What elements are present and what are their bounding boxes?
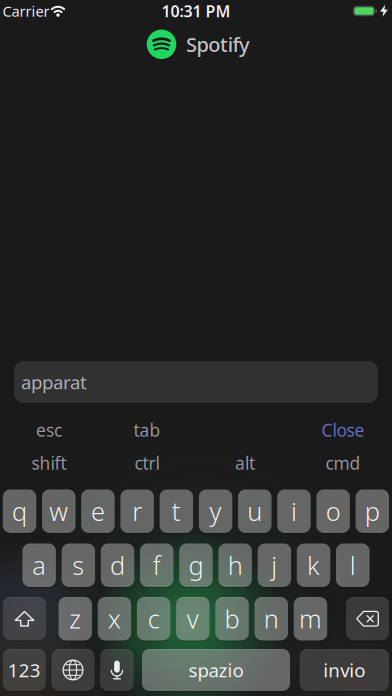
button[interactable]: alt [196, 448, 294, 478]
staticText: d [110, 548, 125, 582]
staticText: apparat [21, 370, 87, 394]
staticText: c [148, 602, 160, 635]
button[interactable]: a [22, 543, 56, 587]
staticText: r [132, 494, 142, 528]
button[interactable]: esc [0, 415, 98, 445]
button[interactable]: o [316, 489, 350, 533]
button[interactable]: v [176, 597, 210, 640]
button[interactable]: cmd [294, 448, 392, 478]
staticText: shift [31, 451, 66, 474]
button[interactable]: x [98, 597, 131, 640]
staticText: w [49, 494, 68, 528]
staticText: l [350, 548, 356, 582]
staticText: cmd [325, 451, 360, 474]
staticText: ctrl [134, 451, 159, 474]
button[interactable]: i [277, 489, 311, 533]
button[interactable]: u [238, 489, 271, 533]
staticText: o [326, 494, 341, 528]
staticText: tab [133, 418, 160, 441]
staticText: g [188, 548, 203, 582]
button[interactable]: spazio [142, 649, 290, 691]
staticText: Spotify [186, 31, 250, 58]
staticText: n [264, 602, 279, 635]
button[interactable]: ctrl [98, 448, 196, 478]
button[interactable]: Delete [346, 597, 389, 640]
button[interactable]: w [42, 489, 75, 533]
button[interactable]: Next keyboard [51, 649, 94, 691]
button[interactable]: s [62, 543, 95, 587]
staticText: m [299, 602, 322, 635]
button[interactable]: Close [294, 415, 392, 445]
staticText: f [153, 548, 161, 582]
staticText: j [271, 548, 277, 582]
staticText: 123 [8, 658, 41, 682]
button[interactable]: y [199, 489, 232, 533]
button[interactable]: shift [0, 448, 98, 478]
staticText: z [69, 602, 81, 635]
button[interactable]: e [81, 489, 115, 533]
staticText: k [307, 548, 320, 582]
button[interactable]: tab [98, 415, 196, 445]
button[interactable]: j [258, 543, 291, 587]
button[interactable]: t [160, 489, 193, 533]
button[interactable]: b [215, 597, 249, 640]
staticText: y [210, 494, 222, 528]
staticText: b [225, 602, 240, 635]
button[interactable]: l [336, 543, 369, 587]
staticText: u [247, 494, 262, 528]
staticText: invio [323, 658, 365, 682]
staticText: x [108, 602, 121, 635]
button[interactable]: q [3, 489, 36, 533]
button[interactable]: Shift [3, 597, 46, 640]
button[interactable]: h [218, 543, 252, 587]
button[interactable]: n [254, 597, 288, 640]
button[interactable]: Dictation [100, 649, 134, 691]
staticText: a [32, 548, 46, 582]
button[interactable]: g [179, 543, 213, 587]
staticText: p [365, 494, 380, 528]
button[interactable]: r [120, 489, 154, 533]
staticText: i [291, 494, 297, 528]
button[interactable]: f [140, 543, 173, 587]
staticText: e [91, 494, 105, 528]
staticText: Close [321, 418, 364, 441]
staticText: esc [36, 418, 62, 441]
staticText: s [72, 548, 84, 582]
staticText: 10:31 PM [161, 0, 230, 22]
staticText: Carrier [2, 1, 49, 21]
button[interactable]: c [137, 597, 170, 640]
button[interactable]: k [297, 543, 330, 587]
button[interactable]: Text input: apparat [14, 361, 378, 403]
staticText: q [12, 494, 27, 528]
staticText: v [187, 602, 199, 635]
staticText: t [172, 494, 181, 528]
button[interactable]: z [58, 597, 92, 640]
staticText: spazio [188, 658, 243, 682]
staticText: alt [235, 451, 255, 474]
staticText: h [228, 548, 243, 582]
button[interactable]: p [356, 489, 389, 533]
button[interactable]: d [101, 543, 134, 587]
button[interactable]: 123 [3, 649, 46, 691]
button[interactable]: m [294, 597, 327, 640]
button[interactable]: invio [299, 649, 389, 691]
